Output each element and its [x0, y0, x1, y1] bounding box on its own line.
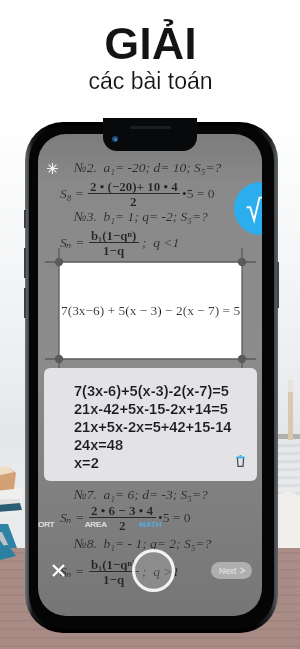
staticText: 7(3x-6)+5(x-3)-2(x-7)=5: [74, 383, 229, 399]
staticText: Sₙ =: [60, 508, 85, 526]
staticText: №7. a₁= 6; d= -3; S₅=?: [74, 487, 208, 502]
staticText: 21x-42+5x-15-2x+14=5: [74, 401, 228, 417]
staticText: b₁(1−qⁿ): [91, 557, 137, 571]
staticText: 7(3x−6) + 5(x − 3) − 2(x − 7) = 5: [61, 303, 241, 318]
staticText: GIẢI: [104, 18, 197, 68]
staticText: 24x=48: [74, 437, 124, 453]
button[interactable]: Close: [45, 557, 71, 583]
button[interactable]: Delete: [231, 451, 249, 469]
button[interactable]: Flash: [45, 161, 59, 175]
staticText: Next: [219, 566, 237, 575]
staticText: 1−q: [103, 243, 125, 257]
staticText: 1−q: [103, 572, 125, 586]
staticText: ; q <1: [142, 235, 180, 250]
staticText: •5 = 0: [158, 510, 191, 525]
button[interactable]: Solve: [234, 182, 262, 235]
button[interactable]: ORT: [38, 520, 55, 529]
staticText: Sₙ =: [60, 562, 85, 580]
staticText: №3. b₁= 1; q= -2; S₅=?: [74, 209, 208, 224]
button[interactable]: AREA: [85, 520, 107, 529]
staticText: •5 = 0: [182, 186, 215, 201]
staticText: AREA: [85, 520, 107, 529]
staticText: ; q >1: [142, 564, 180, 579]
staticText: ORT: [38, 520, 55, 529]
staticText: các bài toán: [88, 68, 213, 94]
staticText: №2. a₁= -20; d= 10; S₅=?: [74, 160, 222, 175]
staticText: x=2: [74, 455, 99, 471]
button[interactable]: MATH: [139, 520, 162, 529]
staticText: MATH: [139, 520, 162, 529]
staticText: №8. b₁= - 1; q= 2; S₅=?: [74, 536, 212, 551]
staticText: S₈ =: [60, 186, 84, 201]
staticText: 2 • 6 − 3 • 4: [91, 503, 154, 517]
button[interactable]: Next: [211, 562, 252, 579]
staticText: Sₙ =: [60, 233, 85, 251]
staticText: 2: [130, 194, 137, 208]
staticText: 2 • (−20)+ 10 • 4: [90, 179, 178, 193]
staticText: 2: [119, 518, 126, 532]
staticText: b₁(1−qⁿ): [91, 228, 137, 242]
staticText: 21x+5x-2x=5+42+15-14: [74, 419, 232, 435]
